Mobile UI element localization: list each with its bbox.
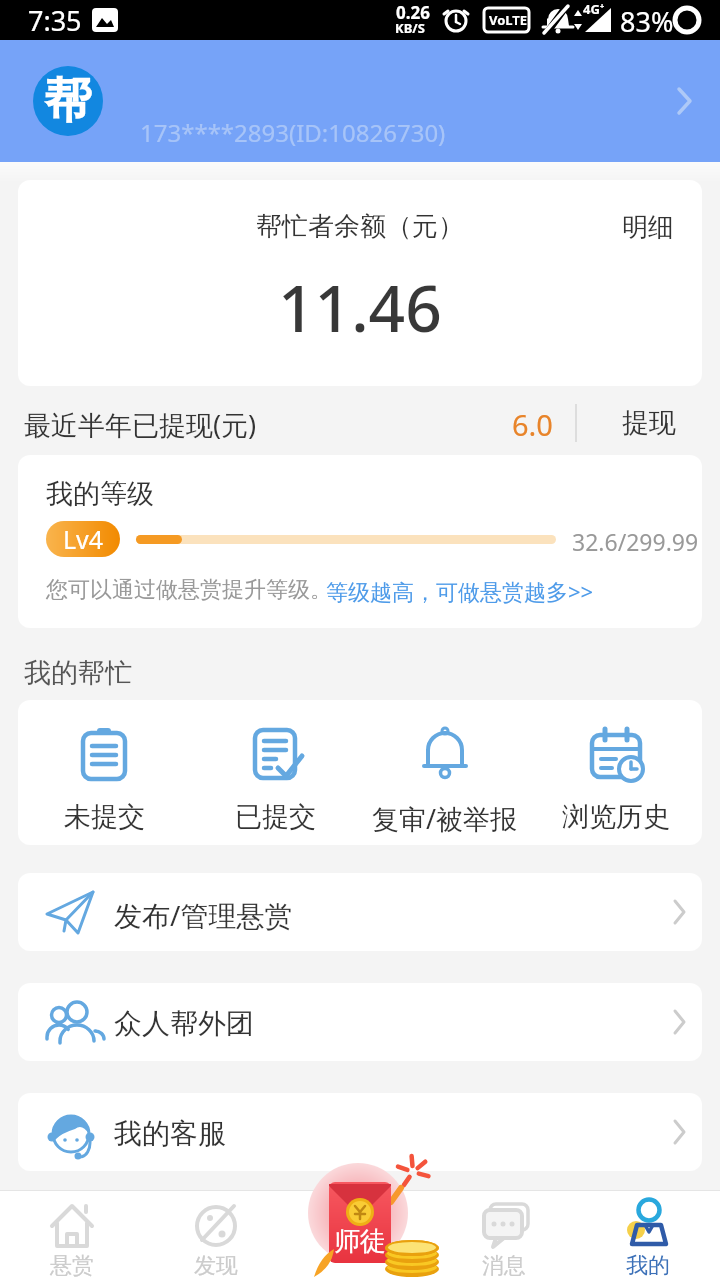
staticText: 师徒 <box>334 1225 386 1258</box>
staticText: 众人帮外团 <box>114 1006 254 1041</box>
staticText: 我的等级 <box>46 477 154 511</box>
staticText: 帮 <box>44 71 92 131</box>
staticText: 浏览历史 <box>562 800 670 834</box>
staticText: 复审/被举报 <box>372 800 518 837</box>
staticText: 83% <box>620 3 674 40</box>
staticText: 173****2893(ID:10826730) <box>140 116 446 149</box>
staticText: 最近半年已提现(元) <box>24 406 257 443</box>
staticText: 发现 <box>194 1252 238 1280</box>
staticText: 6.0 <box>512 405 553 444</box>
staticText: 帮忙者余额（元） <box>256 210 464 243</box>
staticText: 我的 <box>626 1252 670 1280</box>
staticText: VoLTE <box>489 11 528 29</box>
staticText: 发布/管理悬赏 <box>114 896 293 934</box>
staticText: 等级越高，可做悬赏越多>> <box>326 576 594 606</box>
staticText: 悬赏 <box>50 1252 94 1280</box>
staticText: 7:35 <box>28 2 82 39</box>
staticText: 11.46 <box>278 264 442 351</box>
staticText: 未提交 <box>64 800 145 834</box>
staticText: KB/S <box>395 19 425 37</box>
staticText: 消息 <box>482 1252 526 1280</box>
staticText: 已提交 <box>235 800 316 834</box>
staticText: 32.6/299.99 <box>572 526 699 557</box>
staticText: 我的帮忙 <box>24 656 132 690</box>
staticText: 您可以通过做悬赏提升等级。 <box>46 576 332 604</box>
staticText: 4G⁺ <box>583 0 605 18</box>
staticText: 我的客服 <box>114 1116 226 1151</box>
staticText: Lv4 <box>63 522 104 556</box>
staticText: 提现 <box>622 406 676 440</box>
staticText: 0.26 <box>396 1 430 24</box>
staticText: 明细 <box>622 211 674 244</box>
